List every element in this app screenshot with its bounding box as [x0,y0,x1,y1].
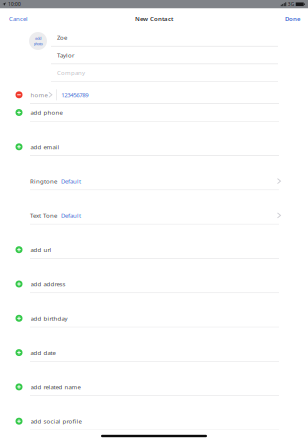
button[interactable]: add phone [0,104,308,122]
button[interactable]: Text Tone [0,207,308,225]
staticText: Default [61,177,81,185]
button[interactable]: add birthday [0,310,308,327]
staticText: add url [30,246,51,254]
staticText: add related name [30,383,80,391]
button[interactable]: add social profile [0,413,308,430]
staticText: home [31,91,48,99]
staticText: 3G [288,1,294,7]
button[interactable]: Done [279,11,308,27]
button[interactable]: Add photo [0,29,47,50]
staticText: add date [30,348,55,357]
staticText: add birthday [30,314,67,322]
staticText: Cancel [9,15,28,23]
button[interactable]: add date [0,344,308,362]
button[interactable]: add related name [0,378,308,396]
staticText: Taylor [57,51,74,59]
staticText: Text Tone [30,211,57,219]
button[interactable]: add email [0,138,308,156]
button[interactable]: Ringtone [0,173,308,190]
staticText: Done [285,15,301,23]
button[interactable]: add address [0,275,308,293]
staticText: add address [30,280,65,288]
staticText: photo [33,41,42,46]
staticText: add email [30,143,59,151]
button[interactable]: add url [0,241,308,259]
staticText: Default [61,211,81,219]
button[interactable]: Cancel [0,11,34,27]
staticText: add [35,36,41,41]
staticText: add social profile [30,417,81,425]
staticText: add phone [30,108,62,117]
staticText: New Contact [135,15,173,23]
staticText: 10:00 [8,1,21,7]
staticText: 123456789 [61,91,88,99]
staticText: Zoe [57,33,67,42]
staticText: Ringtone [30,177,57,185]
staticText: Company [57,69,85,77]
button[interactable]: home [0,86,308,104]
